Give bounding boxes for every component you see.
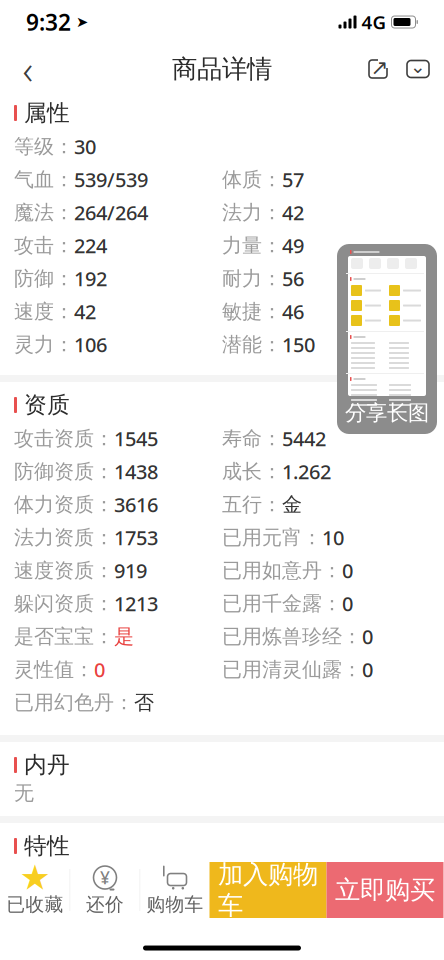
staticText: 42 (74, 298, 96, 325)
staticText: 已用幻色丹： (14, 690, 134, 715)
staticText: 49 (282, 232, 304, 259)
staticText: 9:32 (26, 7, 71, 37)
staticText: ↗ (370, 55, 388, 80)
staticText: 等级： (14, 134, 74, 159)
staticText: 57 (282, 166, 304, 193)
staticText: ¥ (100, 866, 110, 889)
staticText: 资质 (24, 391, 70, 419)
staticText: 4G (361, 10, 386, 34)
staticText: 1545 (114, 425, 158, 452)
staticText: 1213 (114, 590, 158, 617)
button[interactable]: 分享 (358, 47, 398, 91)
staticText: 否 (134, 690, 154, 715)
staticText: 加入购物车 (218, 859, 318, 921)
staticText: 敏捷： (222, 299, 282, 324)
staticText: 539/539 (74, 166, 148, 193)
button[interactable]: 返回 (6, 47, 50, 91)
staticText: 已用如意丹： (222, 558, 342, 583)
staticText: 0 (342, 590, 353, 617)
staticText: 1.262 (282, 458, 331, 485)
staticText: 已用元宵： (222, 525, 322, 550)
staticText: 46 (282, 298, 304, 325)
staticText: 躲闪资质： (14, 591, 114, 616)
staticText: 42 (282, 199, 304, 226)
staticText: 0 (362, 623, 373, 650)
staticText: 0 (342, 557, 353, 584)
staticText: 寿命： (222, 426, 282, 451)
button[interactable]: 加入购物车 (209, 862, 326, 918)
staticText: 10 (322, 524, 344, 551)
staticText: 速度： (14, 299, 74, 324)
staticText: 属性 (24, 99, 70, 127)
staticText: 还价 (86, 893, 124, 916)
staticText: 商品详情 (172, 53, 272, 84)
staticText: 已用千金露： (222, 591, 342, 616)
staticText: 成长： (222, 459, 282, 484)
staticText: 防御资质： (14, 459, 114, 484)
staticText: ‹ (22, 42, 33, 95)
staticText: 力量： (222, 233, 282, 258)
staticText: 灵力： (14, 332, 74, 357)
staticText: 内丹 (24, 751, 70, 779)
staticText: 1753 (114, 524, 158, 551)
staticText: 3616 (114, 491, 158, 518)
staticText: 264/264 (74, 199, 148, 226)
staticText: 150 (282, 331, 315, 358)
staticText: 0 (94, 656, 105, 683)
staticText: 919 (114, 557, 147, 584)
staticText: 魔法： (14, 200, 74, 225)
staticText: 0 (362, 656, 373, 683)
staticText: 防御： (14, 266, 74, 291)
staticText: 106 (74, 331, 107, 358)
staticText: 耐力： (222, 266, 282, 291)
button[interactable]: ★ (0, 862, 69, 918)
staticText: 攻击资质： (14, 426, 114, 451)
staticText: 法力： (222, 200, 282, 225)
staticText: 已收藏 (6, 893, 63, 916)
staticText: 购物车 (146, 893, 203, 916)
staticText: ⌄ (410, 56, 426, 77)
staticText: ➤ (76, 14, 88, 30)
staticText: 攻击： (14, 233, 74, 258)
staticText: 速度资质： (14, 558, 114, 583)
staticText: 潜能： (222, 332, 282, 357)
staticText: 是否宝宝： (14, 624, 114, 649)
staticText: ★ (19, 858, 50, 897)
button[interactable]: 私信 (398, 47, 438, 91)
staticText: 192 (74, 265, 107, 292)
staticText: 特性 (24, 832, 70, 860)
staticText: 气血： (14, 167, 74, 192)
staticText: 已用清灵仙露： (222, 657, 362, 682)
staticText: 体力资质： (14, 492, 114, 517)
staticText: 30 (74, 133, 96, 160)
staticText: 是 (114, 624, 134, 649)
staticText: 灵性值： (14, 657, 94, 682)
staticText: 无 (14, 781, 34, 805)
button[interactable]: ¥ (70, 862, 139, 918)
button[interactable]: 立即购买 (326, 862, 443, 918)
button[interactable]: 购物车 (140, 862, 209, 918)
staticText: 1438 (114, 458, 158, 485)
button[interactable]: 分享长图 (337, 244, 437, 434)
staticText: 5442 (282, 425, 326, 452)
staticText: 分享长图 (345, 400, 429, 426)
staticText: 五行： (222, 492, 282, 517)
staticText: 已用炼兽珍经： (222, 624, 362, 649)
staticText: 56 (282, 265, 304, 292)
staticText: 立即购买 (335, 874, 435, 905)
staticText: 224 (74, 232, 107, 259)
staticText: 法力资质： (14, 525, 114, 550)
staticText: 金 (282, 492, 302, 517)
staticText: 体质： (222, 167, 282, 192)
